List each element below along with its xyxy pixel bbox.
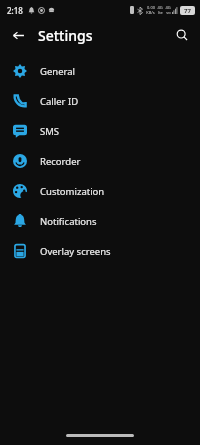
staticText: KB/s xyxy=(146,10,155,15)
button[interactable]: Recorder xyxy=(0,146,200,176)
button[interactable]: SMS xyxy=(0,116,200,146)
button[interactable]: Overlay screens xyxy=(0,236,200,266)
staticText: Notifications xyxy=(40,215,97,228)
button[interactable]: Search xyxy=(170,23,194,47)
staticText: General xyxy=(40,65,76,78)
staticText: 2:18 xyxy=(7,5,23,16)
staticText: Overlay screens xyxy=(40,245,111,258)
staticText: SMS xyxy=(40,125,60,138)
button[interactable]: General xyxy=(0,56,200,86)
button[interactable]: Caller ID xyxy=(0,86,200,116)
button[interactable]: Back xyxy=(6,23,30,47)
button[interactable]: Customization xyxy=(0,176,200,206)
staticText: lte xyxy=(158,10,163,15)
staticText: 0.00 xyxy=(147,5,155,10)
staticText: 77 xyxy=(184,7,191,15)
staticText: Settings xyxy=(38,26,93,45)
staticText: 4G xyxy=(157,5,163,10)
button[interactable]: Notifications xyxy=(0,206,200,236)
staticText: Recorder xyxy=(40,155,81,168)
staticText: Caller ID xyxy=(40,95,79,108)
staticText: 4G xyxy=(165,5,171,10)
staticText: Customization xyxy=(40,185,105,198)
staticText: vo xyxy=(166,10,171,15)
